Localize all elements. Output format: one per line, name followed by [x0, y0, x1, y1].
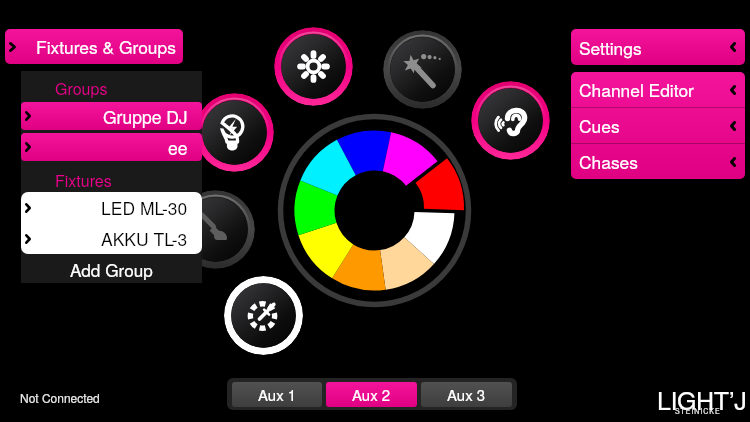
button[interactable]: LED ML-30: [21, 192, 202, 223]
button[interactable]: Effects: [383, 30, 462, 109]
staticText: Settings: [579, 35, 642, 60]
staticText: Not Connected: [20, 389, 100, 406]
button[interactable]: Fixtures & Groups: [5, 29, 183, 64]
staticText: Cues: [579, 113, 620, 138]
staticText: Groups: [55, 77, 108, 100]
staticText: ’J: [729, 381, 747, 415]
staticText: LIGHT: [657, 381, 729, 415]
staticText: Aux 3: [447, 384, 486, 405]
button[interactable]: Sound to light: [471, 81, 550, 160]
staticText: LED ML-30: [101, 195, 188, 220]
button[interactable]: Strobe: [195, 93, 274, 172]
button[interactable]: Aux 1: [232, 382, 322, 407]
staticText: Add Group: [70, 257, 153, 282]
staticText: Fixtures & Groups: [36, 34, 176, 59]
button[interactable]: Add Group: [21, 255, 202, 283]
staticText: STEINICKE: [675, 406, 721, 416]
staticText: Channel Editor: [579, 77, 694, 102]
button[interactable]: Aux 2: [326, 382, 417, 407]
staticText: Gruppe DJ: [103, 104, 188, 129]
staticText: Aux 2: [352, 384, 391, 405]
button[interactable]: Paint: [176, 190, 255, 269]
button[interactable]: Chases: [571, 144, 745, 179]
staticText: Aux 1: [258, 384, 297, 405]
staticText: Fixtures: [55, 169, 112, 192]
button[interactable]: Gruppe DJ: [21, 102, 202, 130]
button[interactable]: Aux 3: [421, 382, 512, 407]
button[interactable]: AKKU TL-3: [21, 223, 202, 254]
button[interactable]: Settings: [571, 29, 745, 65]
staticText: Chases: [579, 149, 638, 174]
button[interactable]: Channel Editor: [571, 72, 745, 107]
staticText: AKKU TL-3: [101, 226, 188, 251]
button[interactable]: Colour wheel: [274, 110, 475, 311]
button[interactable]: Cues: [571, 108, 745, 143]
staticText: ee: [168, 135, 188, 160]
button[interactable]: ee: [21, 133, 202, 161]
button[interactable]: Brightness: [274, 27, 353, 106]
button[interactable]: Colour picker: [224, 276, 303, 355]
